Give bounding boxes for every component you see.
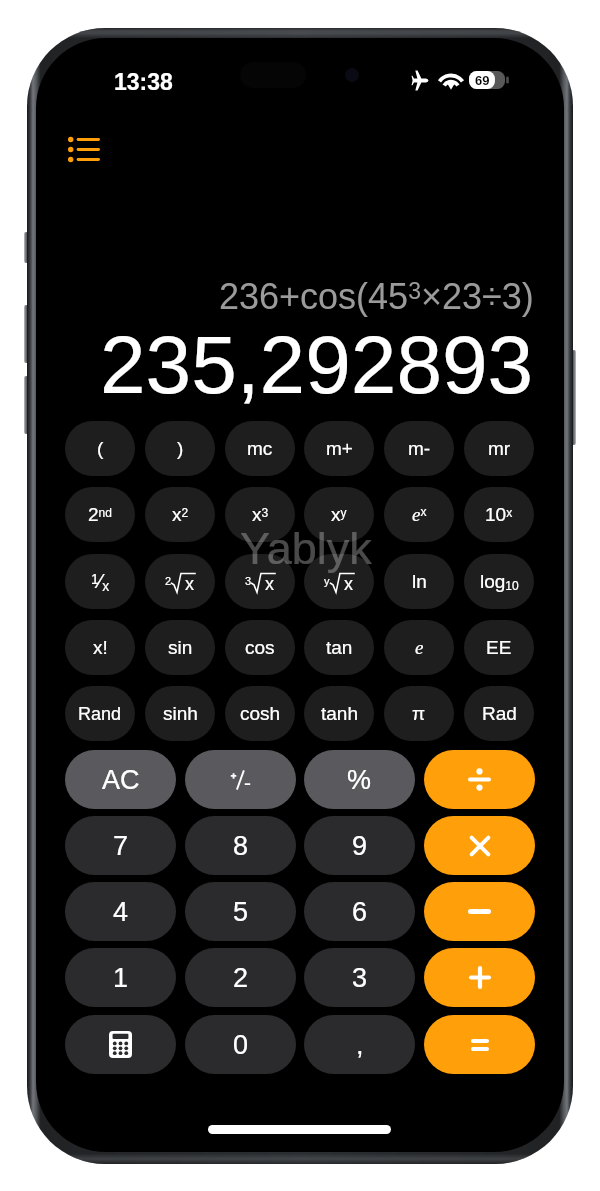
staticText: 69 (475, 73, 490, 88)
button[interactable]: + (424, 948, 535, 1007)
button[interactable]: cube root (225, 554, 295, 609)
button[interactable]: 1 (65, 948, 176, 1007)
staticText: xy (331, 504, 347, 525)
button[interactable]: Rad (464, 686, 534, 741)
button[interactable]: × (424, 816, 535, 875)
staticText: m+ (326, 438, 353, 459)
button[interactable]: mc (225, 421, 295, 476)
staticText: x (344, 574, 353, 594)
staticText: 3 (245, 575, 252, 587)
staticText: AC (102, 765, 140, 795)
staticText: EE (486, 637, 512, 658)
button[interactable]: % (304, 750, 415, 809)
staticText: 2nd (88, 504, 112, 525)
staticText: mc (247, 438, 273, 459)
button[interactable]: e (384, 620, 454, 675)
staticText: 2 (233, 963, 249, 993)
staticText: sinh (163, 703, 198, 724)
button[interactable]: cos (225, 620, 295, 675)
staticText: 6 (352, 897, 368, 927)
staticText: Yablyk (240, 523, 372, 573)
button[interactable]: ten to the x (464, 487, 534, 542)
button[interactable]: calc (65, 1015, 176, 1074)
staticText: 10x (485, 504, 513, 525)
button[interactable]: second (65, 487, 135, 542)
button[interactable]: tanh (304, 686, 374, 741)
staticText: , (356, 1030, 364, 1060)
staticText: m- (408, 438, 431, 459)
button[interactable]: x squared (145, 487, 215, 542)
button[interactable]: 2 (185, 948, 296, 1007)
button[interactable]: +/- (185, 750, 296, 809)
staticText: cos (245, 637, 275, 658)
button[interactable]: History (60, 128, 108, 170)
staticText: ex (412, 504, 427, 525)
staticText: y (324, 575, 330, 587)
button[interactable]: 9 (304, 816, 415, 875)
staticText: x! (93, 637, 108, 658)
button[interactable]: y root (304, 554, 374, 609)
staticText: ( (97, 438, 104, 459)
staticText: x3 (252, 504, 269, 525)
button[interactable]: 0 (185, 1015, 296, 1074)
button[interactable]: 3 (304, 948, 415, 1007)
staticText: x (185, 574, 194, 594)
staticText: x (265, 574, 274, 594)
button[interactable]: m minus (384, 421, 454, 476)
button[interactable]: x factorial (65, 620, 135, 675)
staticText: tan (326, 637, 353, 658)
staticText: 7 (113, 831, 129, 861)
staticText: 235,292893 (100, 319, 534, 411)
button[interactable]: − (424, 882, 535, 941)
button[interactable]: tan (304, 620, 374, 675)
button[interactable]: sin (145, 620, 215, 675)
staticText: x2 (172, 504, 189, 525)
button[interactable]: AC (65, 750, 176, 809)
staticText: 0 (233, 1030, 249, 1060)
button[interactable]: square root (145, 554, 215, 609)
button[interactable]: ln (384, 554, 454, 609)
staticText: 1 (113, 963, 129, 993)
staticText: cosh (240, 703, 281, 724)
button[interactable]: mr (464, 421, 534, 476)
button[interactable]: e to the x (384, 487, 454, 542)
staticText: 3 (352, 963, 368, 993)
button[interactable]: 4 (65, 882, 176, 941)
staticText: 4 (113, 897, 129, 927)
staticText: 5 (233, 897, 249, 927)
button[interactable]: ÷ (424, 750, 535, 809)
staticText: ) (177, 438, 184, 459)
button[interactable]: sinh (145, 686, 215, 741)
button[interactable]: , (304, 1015, 415, 1074)
button[interactable]: 8 (185, 816, 296, 875)
button[interactable]: m plus (304, 421, 374, 476)
button[interactable]: x cubed (225, 487, 295, 542)
button[interactable]: EE (464, 620, 534, 675)
button[interactable]: 5 (185, 882, 296, 941)
button[interactable]: cosh (225, 686, 295, 741)
staticText: 8 (233, 831, 249, 861)
staticText: 9 (352, 831, 368, 861)
button[interactable]: log base 10 (464, 554, 534, 609)
staticText: Rand (78, 704, 122, 724)
staticText: sin (168, 637, 193, 658)
staticText: Rad (482, 703, 517, 724)
staticText: tanh (321, 703, 358, 724)
button[interactable]: 7 (65, 816, 176, 875)
button[interactable]: pi (384, 686, 454, 741)
staticText: % (347, 765, 372, 795)
button[interactable]: = (424, 1015, 535, 1074)
button[interactable]: ( (65, 421, 135, 476)
button[interactable]: Rand (65, 686, 135, 741)
staticText: log10 (480, 571, 519, 593)
staticText: ln (412, 571, 427, 592)
staticText: 13:38 (114, 69, 173, 95)
staticText: 2 (165, 575, 172, 587)
staticText: e (415, 637, 424, 658)
button[interactable]: x to the y (304, 487, 374, 542)
button[interactable]: one over x (65, 554, 135, 609)
button[interactable]: 6 (304, 882, 415, 941)
staticText: π (412, 703, 426, 724)
staticText: mr (488, 438, 511, 459)
button[interactable]: ) (145, 421, 215, 476)
